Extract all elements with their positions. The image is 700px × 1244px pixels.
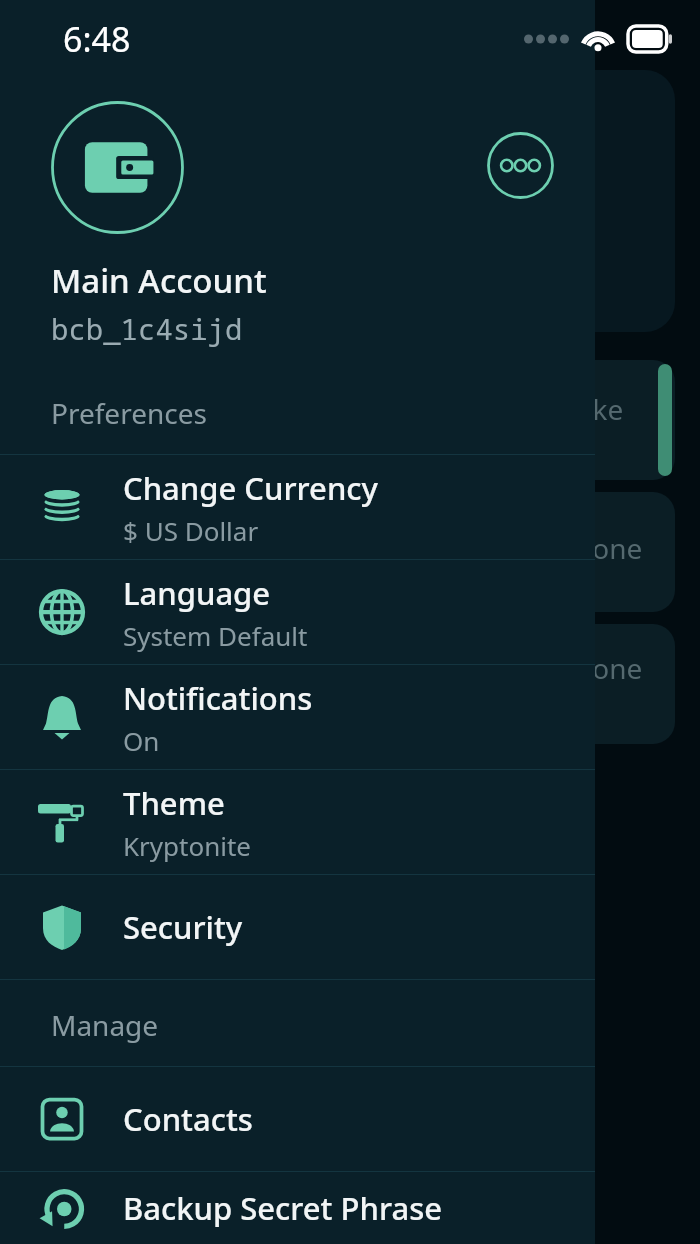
staticText: Security xyxy=(123,906,243,948)
button[interactable]: Language xyxy=(0,560,595,664)
staticText: Theme xyxy=(123,782,225,824)
button[interactable]: Notifications xyxy=(0,665,595,769)
button[interactable]: More options xyxy=(487,132,554,199)
staticText: Language xyxy=(123,572,271,614)
button[interactable]: Account avatar xyxy=(51,101,184,234)
staticText: $ US Dollar xyxy=(123,513,259,548)
button[interactable]: Change Currency xyxy=(0,455,595,559)
staticText: System Default xyxy=(123,618,308,653)
staticText: 6:48 xyxy=(63,16,131,62)
staticText: Mike xyxy=(560,390,624,428)
staticText: Main Account xyxy=(51,258,267,303)
staticText: Someone xyxy=(518,529,643,567)
staticText: Backup Secret Phrase xyxy=(123,1187,442,1229)
button[interactable]: Contacts xyxy=(0,1067,595,1171)
staticText: Notifications xyxy=(123,677,313,719)
staticText: On xyxy=(123,723,160,758)
button[interactable]: Theme xyxy=(0,770,595,874)
button[interactable]: Backup Secret Phrase xyxy=(0,1172,595,1244)
staticText: Manage xyxy=(51,1006,159,1044)
button[interactable]: Security xyxy=(0,875,595,979)
staticText: Preferences xyxy=(51,394,207,432)
staticText: Contacts xyxy=(123,1098,253,1140)
staticText: Change Currency xyxy=(123,467,378,509)
staticText: Kryptonite xyxy=(123,828,252,863)
staticText: Someone xyxy=(518,649,643,687)
staticText: bcb_1c4sijd xyxy=(51,309,243,348)
